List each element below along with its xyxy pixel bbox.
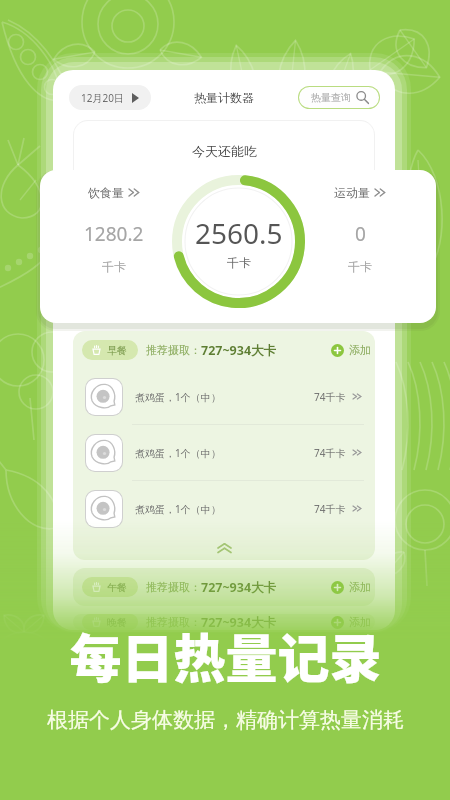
staticText: 1280.2	[84, 221, 144, 247]
staticText: 千卡	[227, 255, 251, 270]
staticText: 煮鸡蛋，1个（中）	[135, 446, 221, 460]
button[interactable]: 煮鸡蛋，1个（中）	[73, 481, 375, 536]
staticText: 热量查询	[311, 91, 351, 104]
staticText: 727~934大卡	[201, 342, 277, 359]
staticText: 74千卡	[314, 446, 346, 460]
button[interactable]: 添加	[331, 580, 371, 594]
staticText: 根据个人身体数据，精确计算热量消耗	[47, 707, 404, 733]
staticText: 推荐摄取：	[146, 580, 201, 594]
staticText: 727~934大卡	[201, 579, 277, 596]
staticText: 推荐摄取：	[146, 343, 201, 357]
button[interactable]: Collapse	[73, 536, 375, 560]
staticText: 74千卡	[314, 502, 346, 516]
staticText: 2560.5	[195, 214, 283, 252]
staticText: 12月20日	[81, 91, 124, 105]
staticText: 727~934大卡	[201, 614, 277, 630]
button[interactable]: 煮鸡蛋，1个（中）	[73, 425, 375, 480]
staticText: 0	[355, 221, 366, 247]
button[interactable]: 12月20日	[69, 85, 151, 110]
staticText: 晚餐	[107, 616, 127, 629]
staticText: 每日热量记录	[69, 618, 382, 693]
button[interactable]: 饮食量	[88, 185, 140, 200]
staticText: 煮鸡蛋，1个（中）	[135, 502, 221, 516]
button[interactable]: 运动量	[334, 185, 386, 200]
button[interactable]: 晚餐	[82, 614, 138, 630]
staticText: 早餐	[107, 344, 127, 357]
staticText: 添加	[349, 580, 371, 594]
staticText: 煮鸡蛋，1个（中）	[135, 390, 221, 404]
button[interactable]: 添加	[331, 615, 371, 629]
button[interactable]: 午餐	[82, 577, 138, 597]
staticText: 饮食量	[88, 185, 124, 200]
button[interactable]: 早餐	[82, 340, 138, 360]
button[interactable]: 热量查询	[299, 87, 379, 108]
button[interactable]: 添加	[331, 343, 371, 357]
staticText: 添加	[349, 615, 371, 629]
staticText: 千卡	[348, 259, 372, 274]
staticText: 74千卡	[314, 390, 346, 404]
staticText: 今天还能吃	[192, 143, 257, 159]
staticText: 千卡	[102, 259, 126, 274]
staticText: 添加	[349, 343, 371, 357]
button[interactable]: 煮鸡蛋，1个（中）	[73, 369, 375, 424]
staticText: 运动量	[334, 185, 370, 200]
staticText: 推荐摄取：	[146, 615, 201, 629]
staticText: 午餐	[107, 581, 127, 594]
staticText: 热量计数器	[194, 90, 254, 105]
